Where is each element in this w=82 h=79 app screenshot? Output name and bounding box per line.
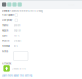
staticText: Advanced [10, 10, 19, 12]
button[interactable]: Advanced [10, 10, 19, 12]
button[interactable]: Open [12, 2, 17, 7]
staticText: Theme [2, 24, 8, 27]
staticText: 30 s [13, 45, 17, 47]
staticText: English [13, 29, 20, 32]
staticText: Network [19, 10, 28, 12]
staticText: Default [13, 40, 21, 42]
staticText: Scale [2, 34, 7, 37]
button[interactable]: Upload artwork [3, 65, 10, 72]
staticText: Limits [29, 10, 36, 12]
staticText: Timeout [2, 45, 10, 47]
button[interactable]: New [7, 2, 11, 7]
button[interactable]: Debug [36, 10, 42, 12]
staticText: Auto update [2, 14, 14, 16]
staticText: General [2, 10, 10, 12]
staticText: Profile [2, 40, 9, 42]
staticText: Use proxy [2, 19, 12, 21]
button[interactable]: General [2, 10, 10, 12]
button[interactable]: Menu [2, 2, 6, 7]
staticText: Notes [2, 50, 8, 53]
staticText: 100 % [13, 34, 19, 37]
staticText: System [13, 24, 20, 27]
button[interactable]: Limits [29, 10, 36, 12]
staticText: Debug [36, 10, 42, 12]
button[interactable]: Network [19, 10, 28, 12]
button[interactable]: Learn more about this setting [2, 74, 32, 77]
staticText: Region [2, 29, 8, 32]
staticText: Artwork [2, 62, 11, 65]
button[interactable]: Save [18, 2, 22, 7]
staticText: Choose a file [12, 67, 26, 70]
staticText: Learn more about this setting [2, 74, 32, 77]
